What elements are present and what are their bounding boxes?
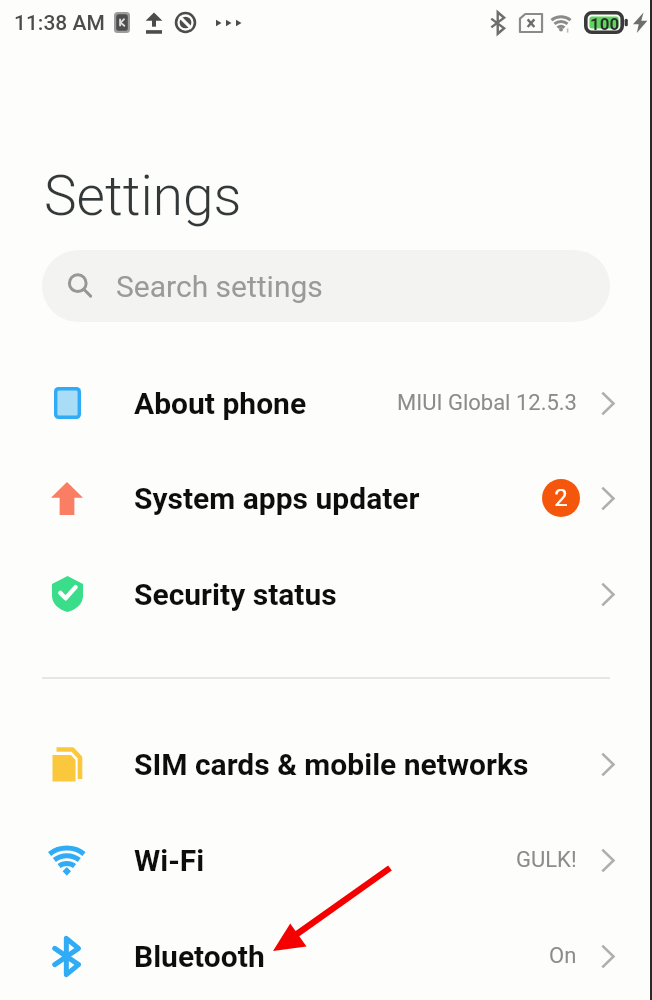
staticText: Settings <box>44 164 242 228</box>
staticText: 100 <box>590 14 620 34</box>
staticText: Bluetooth <box>134 939 265 974</box>
button[interactable]: Wi-Fi <box>0 812 652 908</box>
staticText: On <box>549 943 577 969</box>
button[interactable]: Security status <box>0 546 652 642</box>
staticText: 11:38 AM <box>14 11 105 36</box>
staticText: SIM cards & mobile networks <box>134 747 529 782</box>
staticText: MIUI Global 12.5.3 <box>397 390 577 416</box>
staticText: System apps updater <box>134 481 420 516</box>
staticText: About phone <box>134 386 307 421</box>
button[interactable]: Search settings <box>42 250 610 322</box>
staticText: Security status <box>134 577 337 612</box>
button[interactable]: System apps updater <box>0 450 652 546</box>
button[interactable]: About phone <box>0 355 652 451</box>
staticText: Wi-Fi <box>134 843 205 878</box>
staticText: Search settings <box>116 269 323 304</box>
staticText: GULK! <box>516 847 577 873</box>
staticText: 2 <box>554 484 568 512</box>
button[interactable]: SIM cards & mobile networks <box>0 716 652 812</box>
button[interactable]: Bluetooth <box>0 908 652 1000</box>
